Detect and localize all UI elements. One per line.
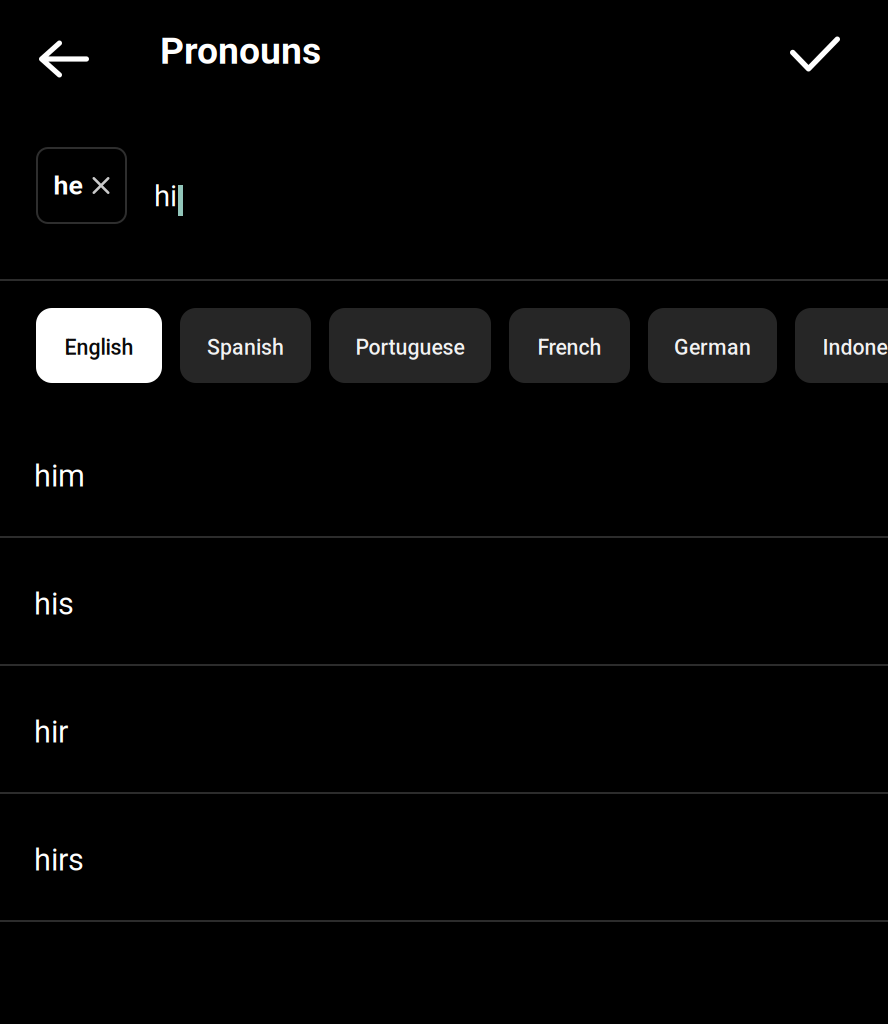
staticText: French xyxy=(537,335,601,360)
staticText: Pronouns xyxy=(160,29,321,73)
staticText: German xyxy=(674,335,751,360)
button[interactable]: hir xyxy=(0,666,888,794)
staticText: Spanish xyxy=(207,335,284,360)
staticText: him xyxy=(34,458,85,494)
staticText: Indonesian xyxy=(822,335,888,360)
button[interactable]: Spanish xyxy=(180,308,311,383)
button[interactable]: German xyxy=(648,308,777,383)
staticText: hi xyxy=(154,179,177,213)
button[interactable]: English xyxy=(36,308,162,383)
button[interactable]: him xyxy=(0,410,888,538)
staticText: hirs xyxy=(34,842,84,878)
button[interactable]: Done xyxy=(742,0,888,104)
button[interactable]: Indonesian xyxy=(795,308,888,383)
staticText: hir xyxy=(34,714,68,750)
button[interactable]: his xyxy=(0,538,888,666)
staticText: Portuguese xyxy=(355,335,464,360)
button[interactable]: French xyxy=(509,308,630,383)
button[interactable]: Portuguese xyxy=(329,308,491,383)
staticText: he xyxy=(53,170,82,201)
button[interactable]: hirs xyxy=(0,794,888,922)
staticText: his xyxy=(34,586,74,622)
button[interactable]: Back xyxy=(0,0,160,104)
button[interactable]: Remove he xyxy=(37,148,126,223)
staticText: English xyxy=(64,335,133,360)
